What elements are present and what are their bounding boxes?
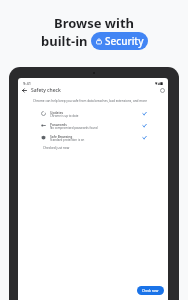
- button[interactable]: Updates: [18, 108, 168, 119]
- staticText: Check now: [142, 289, 159, 293]
- staticText: Standard protection is on: [50, 138, 85, 142]
- staticText: Checked just now: [43, 146, 70, 150]
- staticText: Passwords: [50, 122, 67, 126]
- button[interactable]: Safe Browsing: [18, 132, 168, 143]
- staticText: Safe Browsing: [50, 134, 73, 138]
- staticText: Chrome can help keep you safe from data …: [33, 99, 148, 103]
- staticText: Browse with: [54, 14, 134, 32]
- staticText: Chrome is up to date: [50, 114, 79, 118]
- staticText: Safety check: [31, 87, 61, 94]
- button[interactable]: Check now: [137, 286, 164, 295]
- staticText: built-in: [41, 32, 91, 50]
- staticText: Security: [105, 34, 144, 48]
- staticText: Updates: [50, 110, 64, 114]
- button[interactable]: Passwords: [18, 120, 168, 131]
- button[interactable]: More options: [158, 86, 167, 95]
- button[interactable]: Navigate up: [20, 86, 29, 95]
- staticText: 9:41: [23, 81, 31, 86]
- staticText: No compromised passwords found: [50, 126, 98, 130]
